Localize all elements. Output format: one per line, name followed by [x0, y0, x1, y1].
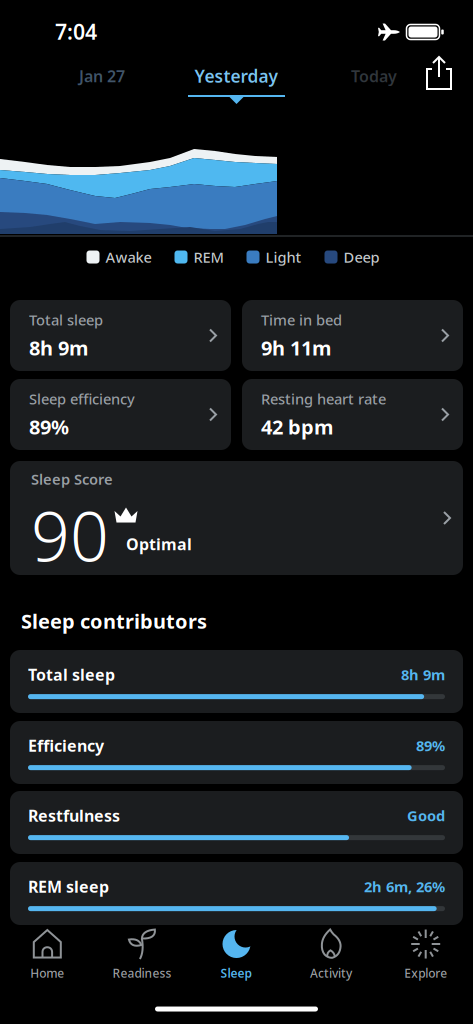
button[interactable]: Explore: [381, 925, 471, 985]
staticText: Jan 27: [79, 65, 125, 87]
staticText: Explore: [404, 965, 447, 981]
staticText: Sleep: [220, 965, 252, 981]
staticText: 9h 11m: [261, 334, 332, 361]
staticText: 8h 9m: [29, 334, 89, 361]
staticText: Sleep efficiency: [29, 389, 135, 408]
staticText: Total sleep: [28, 664, 115, 685]
staticText: Resting heart rate: [261, 389, 386, 408]
staticText: Today: [351, 65, 397, 87]
staticText: 90: [31, 490, 109, 580]
staticText: Time in bed: [261, 310, 342, 329]
staticText: Readiness: [112, 965, 171, 981]
button[interactable]: Resting heart rate: [242, 379, 463, 450]
button[interactable]: REM sleep: [10, 862, 463, 925]
staticText: Optimal: [126, 533, 192, 555]
button[interactable]: [422, 55, 458, 95]
staticText: Home: [30, 965, 64, 981]
button[interactable]: Time in bed: [242, 300, 463, 371]
button[interactable]: Sleep: [191, 925, 281, 985]
button[interactable]: Total sleep: [10, 650, 463, 713]
staticText: Restfulness: [28, 805, 120, 826]
button[interactable]: Jan 27: [52, 56, 152, 96]
button[interactable]: Sleep Score: [10, 461, 463, 575]
staticText: Deep: [343, 247, 379, 267]
staticText: Awake: [105, 247, 151, 267]
button[interactable]: Readiness: [97, 925, 187, 985]
staticText: Yesterday: [194, 64, 277, 87]
button[interactable]: Today: [329, 56, 419, 96]
staticText: 89%: [29, 413, 69, 440]
staticText: 2h 6m, 26%: [364, 877, 445, 896]
staticText: Light: [265, 247, 301, 267]
button[interactable]: Total sleep: [10, 300, 231, 371]
button[interactable]: Efficiency: [10, 721, 463, 784]
button[interactable]: Activity: [286, 925, 376, 985]
button[interactable]: Restfulness: [10, 791, 463, 854]
staticText: 89%: [416, 736, 445, 755]
button[interactable]: Yesterday: [176, 56, 296, 96]
staticText: Good: [407, 806, 445, 825]
staticText: Sleep contributors: [21, 608, 207, 634]
staticText: Activity: [310, 965, 352, 981]
staticText: Sleep Score: [31, 469, 113, 489]
button[interactable]: Home: [2, 925, 92, 985]
staticText: 8h 9m: [401, 665, 445, 684]
staticText: Total sleep: [29, 310, 103, 329]
button[interactable]: Sleep efficiency: [10, 379, 231, 450]
staticText: Efficiency: [28, 735, 104, 756]
staticText: 7:04: [55, 17, 97, 46]
staticText: REM sleep: [28, 876, 109, 897]
staticText: REM: [193, 247, 223, 267]
staticText: 42 bpm: [261, 413, 334, 440]
